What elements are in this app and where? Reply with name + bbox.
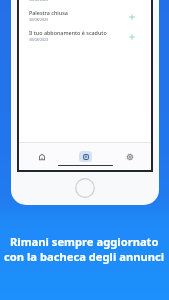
button[interactable]: Palestra chiusa xyxy=(19,5,151,25)
button[interactable]: Espandi xyxy=(127,12,137,22)
button[interactable]: Home xyxy=(19,150,63,162)
staticText: 30/08/2023 xyxy=(29,17,49,22)
staticText: Rimani sempre aggiornato xyxy=(10,234,159,249)
staticText: Il tuo abbonamento è scaduto xyxy=(29,29,107,36)
button[interactable]: Espandi xyxy=(127,32,137,42)
staticText: 30/08/2023 xyxy=(29,0,49,2)
staticText: con la bacheca degli annunci xyxy=(4,249,165,264)
button[interactable]: Impostazioni xyxy=(107,150,151,162)
button[interactable]: Il tuo abbonamento è scaduto xyxy=(19,25,151,45)
staticText: 30/08/2023 xyxy=(29,37,49,42)
button[interactable]: Bacheca xyxy=(63,150,107,162)
staticText: Palestra chiusa xyxy=(29,9,68,16)
button[interactable]: Home xyxy=(75,178,95,198)
button[interactable]: Nuovi corsi disponibili xyxy=(19,0,151,5)
